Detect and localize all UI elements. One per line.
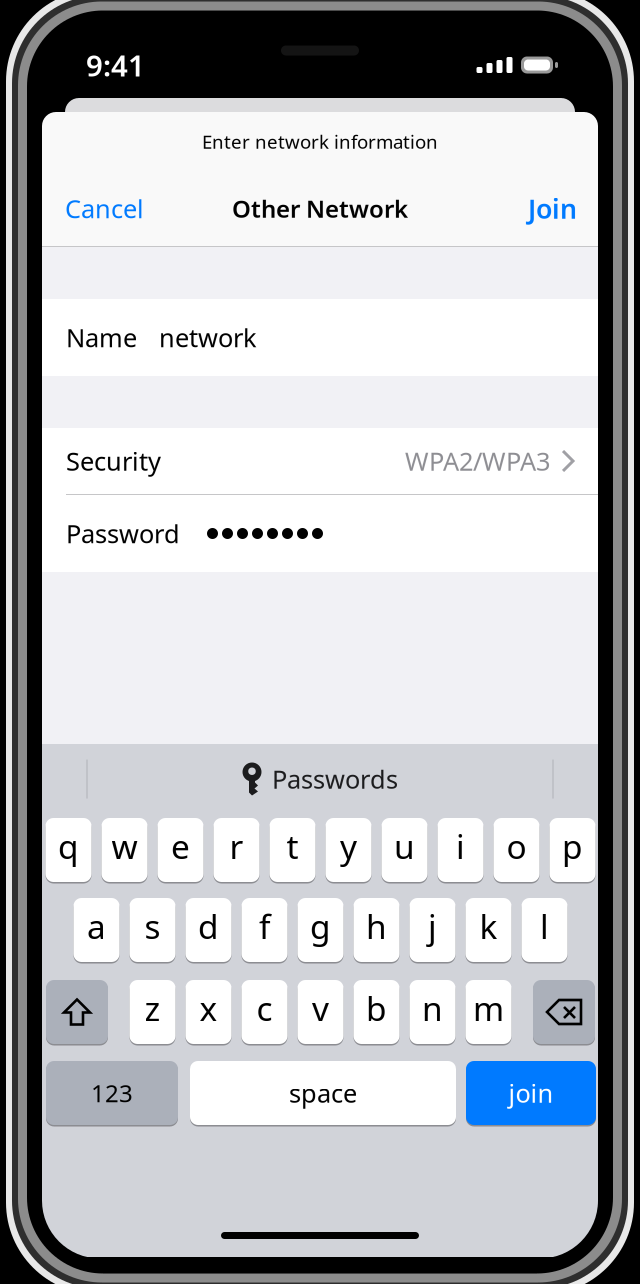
- staticText: v: [312, 986, 329, 1030]
- staticText: c: [256, 986, 272, 1030]
- staticText: w: [111, 824, 137, 868]
- button[interactable]: o: [493, 817, 539, 883]
- staticText: Passwords: [272, 762, 398, 796]
- button[interactable]: a: [73, 897, 119, 963]
- staticText: Security: [66, 444, 161, 478]
- staticText: n: [422, 986, 443, 1030]
- button[interactable]: l: [521, 897, 567, 963]
- button[interactable]: z: [129, 979, 175, 1045]
- button[interactable]: t: [269, 817, 315, 883]
- button[interactable]: e: [157, 817, 203, 883]
- button[interactable]: s: [129, 897, 175, 963]
- staticText: Enter network information: [202, 129, 438, 154]
- staticText: m: [473, 986, 504, 1030]
- button[interactable]: p: [549, 817, 595, 883]
- staticText: Cancel: [65, 192, 144, 225]
- staticText: space: [289, 1076, 357, 1110]
- button[interactable]: u: [381, 817, 427, 883]
- staticText: WPA2/WPA3: [405, 444, 550, 478]
- button[interactable]: m: [465, 979, 511, 1045]
- staticText: r: [229, 824, 243, 868]
- staticText: join: [508, 1076, 553, 1110]
- button[interactable]: n: [409, 979, 455, 1045]
- staticText: a: [87, 904, 106, 948]
- button[interactable]: j: [409, 897, 455, 963]
- staticText: j: [428, 904, 437, 948]
- staticText: 123: [91, 1077, 133, 1109]
- staticText: Other Network: [232, 193, 408, 224]
- button[interactable]: b: [353, 979, 399, 1045]
- staticText: h: [366, 904, 387, 948]
- button[interactable]: Delete: [533, 979, 595, 1045]
- staticText: network: [159, 321, 257, 354]
- staticText: t: [286, 824, 298, 868]
- button[interactable]: Shift: [46, 979, 108, 1045]
- staticText: g: [310, 904, 331, 948]
- button[interactable]: i: [437, 817, 483, 883]
- button[interactable]: 123: [46, 1060, 178, 1126]
- button[interactable]: q: [45, 817, 91, 883]
- staticText: b: [366, 986, 387, 1030]
- staticText: Password: [66, 517, 180, 550]
- button[interactable]: space: [190, 1060, 456, 1126]
- button[interactable]: Cancel: [65, 178, 144, 238]
- staticText: z: [144, 986, 160, 1030]
- staticText: p: [562, 824, 583, 868]
- button[interactable]: c: [241, 979, 287, 1045]
- button[interactable]: v: [297, 979, 343, 1045]
- button[interactable]: y: [325, 817, 371, 883]
- staticText: l: [540, 904, 549, 948]
- staticText: o: [506, 824, 526, 868]
- staticText: Name: [66, 321, 137, 354]
- staticText: u: [394, 824, 415, 868]
- button[interactable]: f: [241, 897, 287, 963]
- staticText: k: [479, 904, 497, 948]
- staticText: i: [456, 824, 465, 868]
- staticText: y: [340, 824, 357, 868]
- staticText: Join: [528, 191, 577, 226]
- button[interactable]: d: [185, 897, 231, 963]
- button[interactable]: Passwords: [180, 753, 460, 805]
- staticText: d: [198, 904, 219, 948]
- staticText: e: [171, 824, 190, 868]
- staticText: q: [58, 824, 79, 868]
- staticText: s: [144, 904, 160, 948]
- button[interactable]: h: [353, 897, 399, 963]
- button[interactable]: g: [297, 897, 343, 963]
- button[interactable]: r: [213, 817, 259, 883]
- button[interactable]: join: [466, 1060, 596, 1126]
- staticText: 9:41: [86, 45, 145, 84]
- button[interactable]: x: [185, 979, 231, 1045]
- staticText: x: [199, 986, 217, 1030]
- button[interactable]: Join: [528, 178, 577, 238]
- button[interactable]: Security: [42, 428, 598, 494]
- button[interactable]: w: [101, 817, 147, 883]
- button[interactable]: k: [465, 897, 511, 963]
- staticText: f: [259, 904, 270, 948]
